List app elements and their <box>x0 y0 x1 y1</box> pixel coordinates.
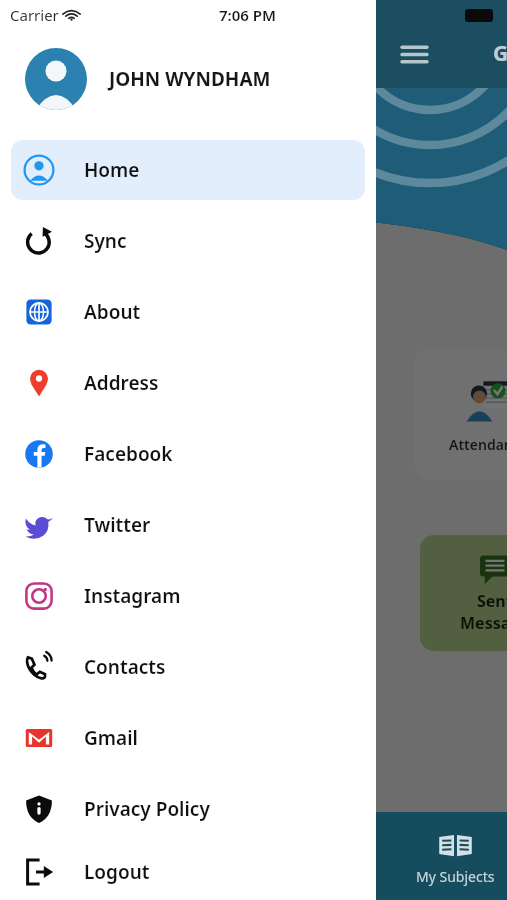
staticText: About <box>84 299 141 325</box>
staticText: JOHN WYNDHAM <box>109 66 271 92</box>
button[interactable]: Contacts <box>11 637 365 697</box>
staticText: Logout <box>84 859 150 885</box>
staticText: Attendance <box>449 435 507 454</box>
button[interactable]: Gmail <box>11 708 365 768</box>
button[interactable]: Open navigation menu <box>396 36 432 72</box>
button[interactable]: Twitter <box>11 495 365 555</box>
button[interactable]: Instagram <box>11 566 365 626</box>
staticText: G <box>493 39 507 68</box>
staticText: Address <box>84 370 159 396</box>
button[interactable]: Open navigation menu <box>396 36 432 72</box>
button[interactable]: About <box>11 282 365 342</box>
staticText: Gmail <box>84 725 138 751</box>
staticText: Sync <box>84 228 127 254</box>
staticText: G <box>493 39 507 68</box>
button[interactable]: Logout <box>11 844 365 900</box>
staticText: Twitter <box>84 512 151 538</box>
staticText: Sent <box>477 590 507 612</box>
button[interactable]: My Subjects <box>404 826 507 886</box>
button[interactable]: Sent <box>420 535 507 651</box>
staticText: Home <box>84 157 140 183</box>
button[interactable]: Privacy Policy <box>11 779 365 839</box>
staticText: Facebook <box>84 441 173 467</box>
staticText: 7:06 PM <box>219 5 276 25</box>
button[interactable]: Facebook <box>11 424 365 484</box>
staticText: Carrier <box>10 5 59 25</box>
button[interactable]: Address <box>11 353 365 413</box>
staticText: Contacts <box>84 654 166 680</box>
button[interactable]: Attendance <box>414 347 507 480</box>
staticText: Privacy Policy <box>84 796 210 822</box>
button[interactable]: Home <box>11 140 365 200</box>
staticText: Message <box>460 612 507 634</box>
button[interactable]: Sync <box>11 211 365 271</box>
staticText: Instagram <box>84 583 181 609</box>
staticText: My Subjects <box>416 867 495 886</box>
